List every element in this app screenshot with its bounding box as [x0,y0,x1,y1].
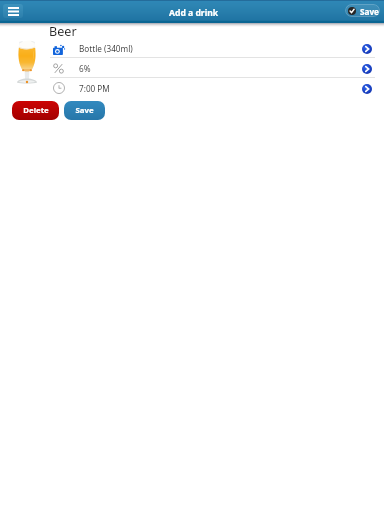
button[interactable]: Save [64,101,105,120]
button[interactable]: Save [345,4,380,17]
button[interactable]: 7:00 PM [0,78,384,98]
button[interactable]: Menu [3,4,23,18]
button[interactable]: Delete [12,101,59,120]
button[interactable]: 6% [0,58,384,78]
button[interactable]: Bottle (340ml) [0,38,384,58]
staticText: Beer [49,23,77,40]
staticText: Add a drink [169,7,219,19]
staticText: Save [75,105,94,116]
staticText: 6% [79,63,91,74]
staticText: 7:00 PM [79,83,110,94]
staticText: Bottle (340ml) [79,43,133,54]
staticText: Save [360,6,379,17]
staticText: Delete [23,105,49,116]
